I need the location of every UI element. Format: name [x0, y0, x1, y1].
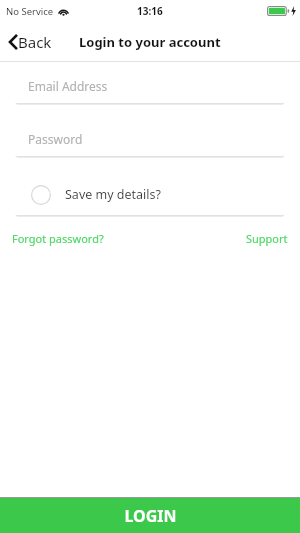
staticText: Password — [28, 131, 83, 147]
staticText: Login to your account — [79, 33, 221, 51]
staticText: Support — [246, 231, 288, 246]
staticText: Forgot password? — [12, 231, 104, 246]
staticText: No Service — [6, 5, 54, 18]
button[interactable]: Back — [0, 26, 60, 58]
staticText: LOGIN — [124, 505, 177, 527]
button[interactable]: Email Address — [15, 68, 285, 103]
staticText: Save my details? — [65, 186, 161, 203]
button[interactable]: Support — [244, 228, 290, 249]
staticText: 13:16 — [137, 4, 163, 18]
staticText: Email Address — [28, 78, 108, 94]
button[interactable]: Forgot password? — [10, 228, 106, 249]
button[interactable]: LOGIN — [0, 498, 300, 533]
staticText: Back — [18, 32, 52, 52]
button[interactable]: Save my details? — [15, 174, 285, 215]
button[interactable]: Password — [15, 122, 285, 156]
